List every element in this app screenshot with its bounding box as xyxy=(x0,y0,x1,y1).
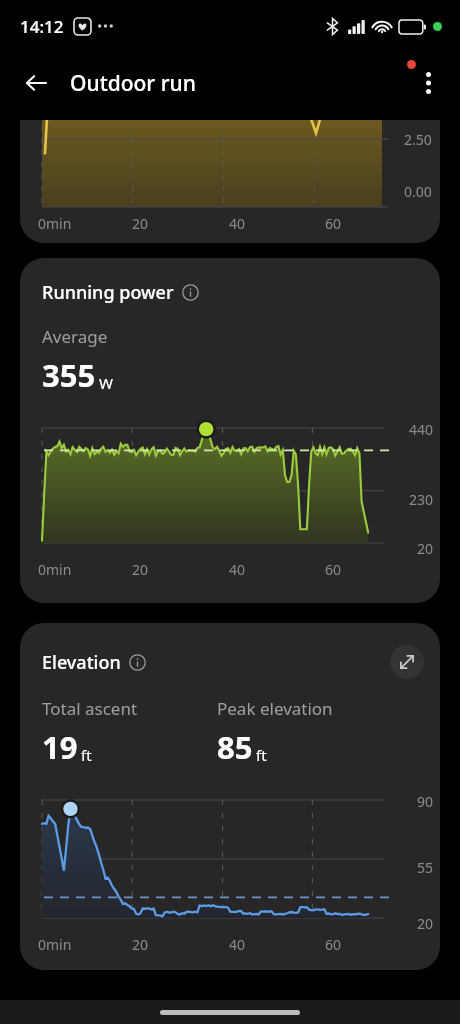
button[interactable]: Back xyxy=(14,61,58,105)
staticText: 60 xyxy=(325,560,342,579)
staticText: 2.50 xyxy=(404,130,432,149)
staticText: 0min xyxy=(38,560,72,579)
button[interactable]: Expand xyxy=(390,645,424,679)
staticText: 19 xyxy=(42,726,78,768)
staticText: 85 xyxy=(217,726,253,768)
staticText: Elevation xyxy=(42,650,121,675)
staticText: 14:12 xyxy=(20,15,64,38)
button[interactable]: 2.50 xyxy=(20,120,440,243)
staticText: 355 xyxy=(42,354,96,396)
staticText: 60 xyxy=(325,214,342,233)
staticText: 20 xyxy=(132,935,149,954)
button[interactable]: More options xyxy=(406,61,450,105)
staticText: Running power xyxy=(42,280,174,305)
staticText: ft xyxy=(256,745,267,765)
staticText: 55 xyxy=(417,858,434,877)
staticText: 40 xyxy=(229,560,246,579)
staticText: 230 xyxy=(409,490,434,509)
staticText: 90 xyxy=(417,792,434,811)
staticText: ft xyxy=(81,745,92,765)
staticText: Average xyxy=(42,325,108,348)
button[interactable]: Elevation xyxy=(20,623,440,970)
staticText: 20 xyxy=(132,560,149,579)
staticText: 40 xyxy=(229,935,246,954)
staticText: 20 xyxy=(417,914,434,933)
staticText: Peak elevation xyxy=(217,697,333,720)
staticText: 20 xyxy=(132,214,149,233)
staticText: 60 xyxy=(325,935,342,954)
staticText: 40 xyxy=(229,214,246,233)
staticText: W xyxy=(99,373,113,393)
staticText: Total ascent xyxy=(42,697,138,720)
staticText: 0.00 xyxy=(404,182,432,201)
button[interactable]: Running power xyxy=(20,258,440,603)
staticText: 20 xyxy=(417,539,434,558)
staticText: Outdoor run xyxy=(70,69,196,98)
staticText: 440 xyxy=(409,420,434,439)
staticText: 0min xyxy=(38,935,72,954)
staticText: 0min xyxy=(38,214,72,233)
